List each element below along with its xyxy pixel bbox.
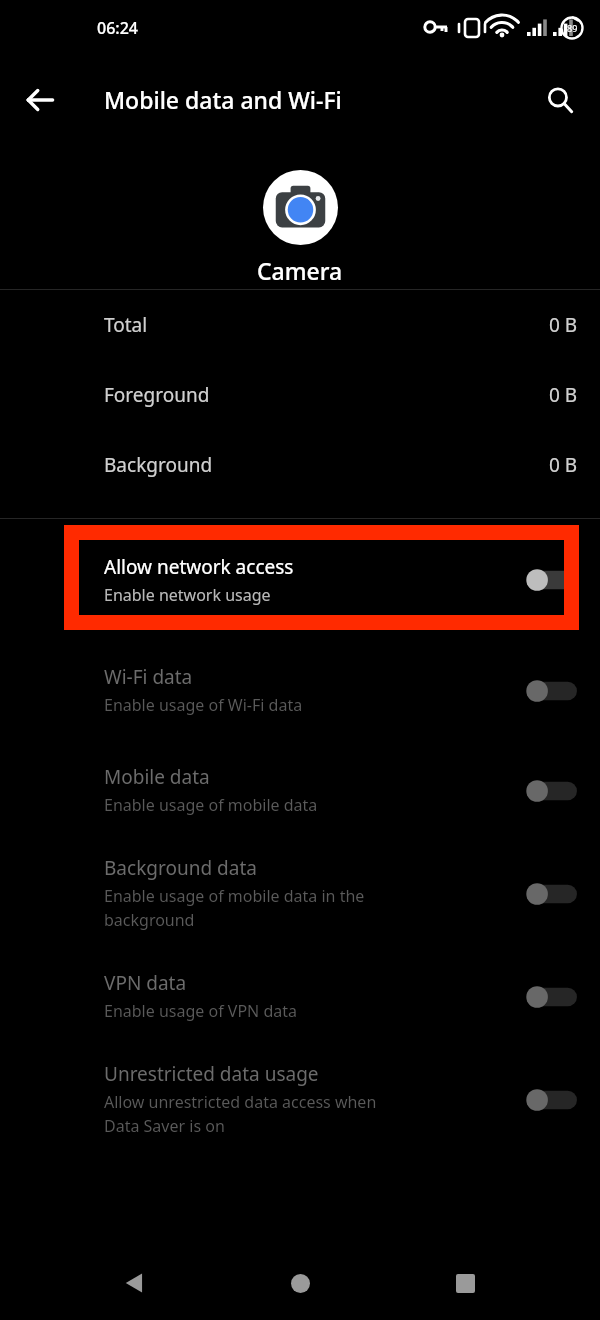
button[interactable]: Back	[105, 1253, 165, 1313]
staticText: 0 B	[549, 452, 578, 478]
staticText: Enable usage of VPN data	[104, 1000, 297, 1022]
staticText: Mobile data	[104, 764, 210, 790]
staticText: 89	[567, 22, 578, 34]
staticText: background	[104, 909, 195, 931]
staticText: Data Saver is on	[104, 1115, 225, 1137]
button[interactable]: Recent apps	[435, 1253, 495, 1313]
staticText: VPN data	[104, 970, 187, 996]
button[interactable]: Home	[270, 1253, 330, 1313]
staticText: 06:24	[97, 17, 138, 39]
staticText: Total	[104, 312, 148, 338]
staticText: Enable usage of Wi-Fi data	[104, 694, 303, 716]
button[interactable]: Search	[534, 74, 586, 126]
button[interactable]: Unrestricted data usage	[0, 1047, 600, 1153]
staticText: Foreground	[104, 382, 210, 408]
staticText: Mobile data and Wi-Fi	[104, 84, 342, 115]
button[interactable]: Background	[0, 430, 600, 500]
staticText: Background	[104, 452, 213, 478]
button[interactable]: Mobile data	[0, 741, 600, 841]
staticText: Allow network access	[104, 554, 294, 580]
staticText: Background data	[104, 855, 257, 881]
button[interactable]: Wi-Fi data	[0, 641, 600, 741]
button[interactable]: Foreground	[0, 360, 600, 430]
staticText: Enable network usage	[104, 584, 271, 606]
button[interactable]: Allow network access	[0, 519, 600, 641]
button[interactable]: Total	[0, 290, 600, 360]
staticText: Wi-Fi data	[104, 664, 193, 690]
button[interactable]: Background data	[0, 841, 600, 947]
staticText: Enable usage of mobile data in the	[104, 885, 365, 907]
staticText: Unrestricted data usage	[104, 1061, 319, 1087]
staticText: Camera	[257, 255, 343, 286]
button[interactable]: VPN data	[0, 947, 600, 1047]
staticText: 0 B	[549, 312, 578, 338]
staticText: 0 B	[549, 382, 578, 408]
staticText: Enable usage of mobile data	[104, 794, 318, 816]
button[interactable]: Back	[14, 74, 66, 126]
staticText: Allow unrestricted data access when	[104, 1091, 377, 1113]
